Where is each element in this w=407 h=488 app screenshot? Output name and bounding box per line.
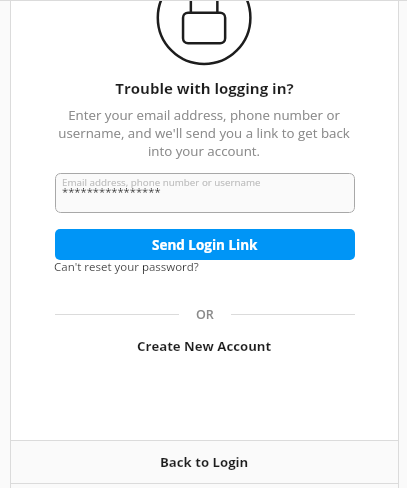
- staticText: Back to Login: [160, 453, 249, 471]
- staticText: ****************: [62, 184, 161, 199]
- staticText: Email address, phone number or username: [62, 176, 261, 189]
- staticText: Trouble with logging in?: [115, 78, 294, 98]
- button[interactable]: Email address, phone number or username: [55, 173, 355, 213]
- staticText: Can't reset your password?: [54, 259, 199, 275]
- staticText: Send Login Link: [152, 236, 258, 254]
- button[interactable]: Create New Account: [137, 337, 272, 355]
- staticText: Enter your email address, phone number o…: [53, 106, 355, 160]
- staticText: OR: [196, 306, 214, 323]
- button[interactable]: Send Login Link: [55, 229, 355, 260]
- staticText: Create New Account: [137, 337, 272, 355]
- button[interactable]: Back to Login: [11, 441, 398, 483]
- button[interactable]: Can't reset your password?: [54, 259, 199, 275]
